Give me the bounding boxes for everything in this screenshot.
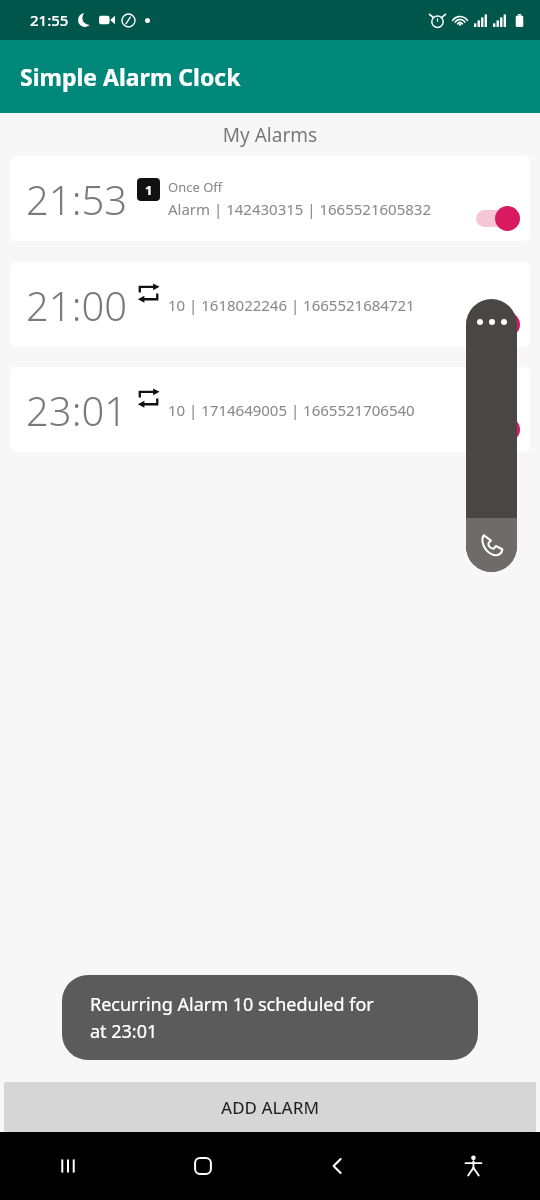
button[interactable]: Edge panel xyxy=(466,299,517,572)
staticText: 21:00 xyxy=(26,278,128,332)
staticText: 21:55 xyxy=(30,10,69,30)
staticText: Simple Alarm Clock xyxy=(20,61,241,92)
button[interactable]: 21:53 xyxy=(10,156,530,241)
staticText: ADD ALARM xyxy=(221,1096,320,1119)
staticText: My Alarms xyxy=(0,122,540,148)
button[interactable]: Back xyxy=(270,1132,405,1200)
staticText: 10 | 1714649005 | 1665521706540 xyxy=(168,400,415,420)
button[interactable]: Recents xyxy=(0,1132,135,1200)
button[interactable]: 23:01 xyxy=(10,367,530,452)
button[interactable]: Toggle alarm 23:01 xyxy=(476,416,520,442)
button[interactable]: ADD ALARM xyxy=(4,1082,536,1132)
button[interactable]: Toggle alarm 21:00 xyxy=(476,311,520,337)
button[interactable]: Toggle alarm 21:53 xyxy=(476,205,520,231)
staticText: 23:01 xyxy=(26,383,128,437)
button[interactable]: Accessibility xyxy=(405,1132,540,1200)
staticText: 1 xyxy=(145,181,153,199)
button[interactable]: Home xyxy=(135,1132,270,1200)
staticText: 10 | 1618022246 | 1665521684721 xyxy=(168,295,415,315)
staticText: 21:53 xyxy=(26,172,128,226)
staticText: Alarm | 142430315 | 1665521605832 xyxy=(168,199,431,219)
staticText: Recurring Alarm 10 scheduled for at 23:0… xyxy=(90,992,374,1043)
staticText: Once Off xyxy=(168,178,223,196)
button[interactable]: 21:00 xyxy=(10,262,530,347)
